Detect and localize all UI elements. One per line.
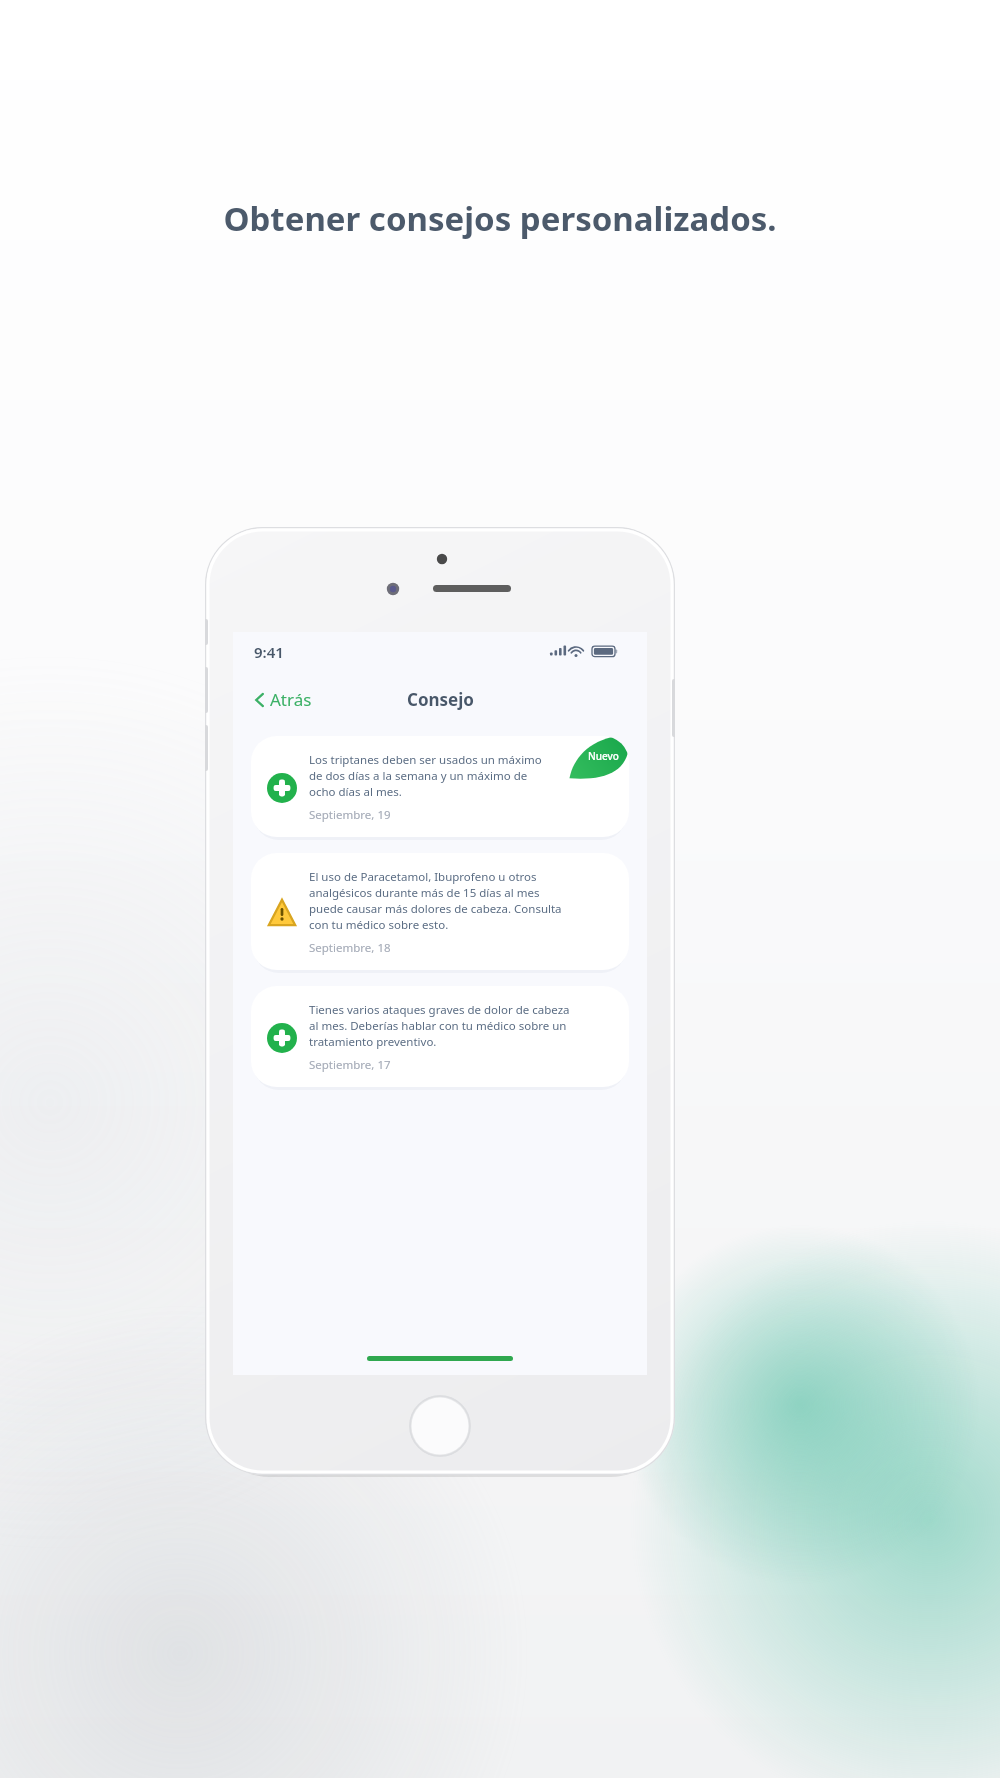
button[interactable]: El uso de Paracetamol, Ibuprofeno u otro… [251, 853, 629, 970]
staticText: con tu médico sobre esto. [309, 917, 449, 933]
staticText: 9:41 [254, 642, 284, 662]
staticText: al mes. Deberías hablar con tu médico so… [309, 1018, 567, 1034]
button[interactable]: Tienes varios ataques graves de dolor de… [251, 986, 629, 1087]
button[interactable]: Atrás [247, 682, 320, 717]
staticText: Nuevo [588, 749, 619, 763]
staticText: de dos días a la semana y un máximo de [309, 768, 528, 784]
staticText: Septiembre, 17 [309, 1057, 391, 1073]
staticText: Obtener consejos personalizados. [0, 196, 1000, 241]
staticText: Septiembre, 18 [309, 940, 391, 956]
staticText: Los triptanes deben ser usados un máximo [309, 752, 542, 768]
button[interactable]: Los triptanes deben ser usados un máximo [251, 736, 629, 837]
staticText: Tienes varios ataques graves de dolor de… [309, 1002, 570, 1018]
staticText: El uso de Paracetamol, Ibuprofeno u otro… [309, 869, 537, 885]
staticText: tratamiento preventivo. [309, 1034, 437, 1050]
staticText: puede causar más dolores de cabeza. Cons… [309, 901, 562, 917]
staticText: analgésicos durante más de 15 días al me… [309, 885, 540, 901]
staticText: Consejo [407, 688, 474, 711]
staticText: Septiembre, 19 [309, 807, 391, 823]
staticText: ocho días al mes. [309, 784, 402, 800]
staticText: Atrás [270, 688, 312, 711]
